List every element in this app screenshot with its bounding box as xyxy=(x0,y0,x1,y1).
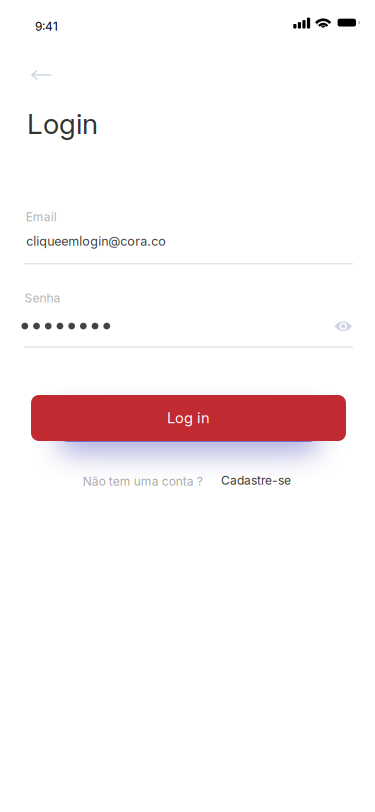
staticText: Email xyxy=(26,210,57,224)
button[interactable]: Cadastre-se xyxy=(221,473,291,487)
button[interactable]: Log in xyxy=(31,395,346,441)
staticText: Cadastre-se xyxy=(221,473,291,487)
staticText: 9:41 xyxy=(35,19,58,33)
staticText: Log in xyxy=(167,409,210,427)
staticText: Login xyxy=(27,107,98,141)
button[interactable]: Back xyxy=(31,70,70,102)
staticText: cliqueemlogin@cora.co xyxy=(26,234,166,249)
staticText: Não tem uma conta ? xyxy=(83,474,203,488)
button[interactable]: Show password xyxy=(330,316,356,337)
staticText: Senha xyxy=(25,291,61,305)
